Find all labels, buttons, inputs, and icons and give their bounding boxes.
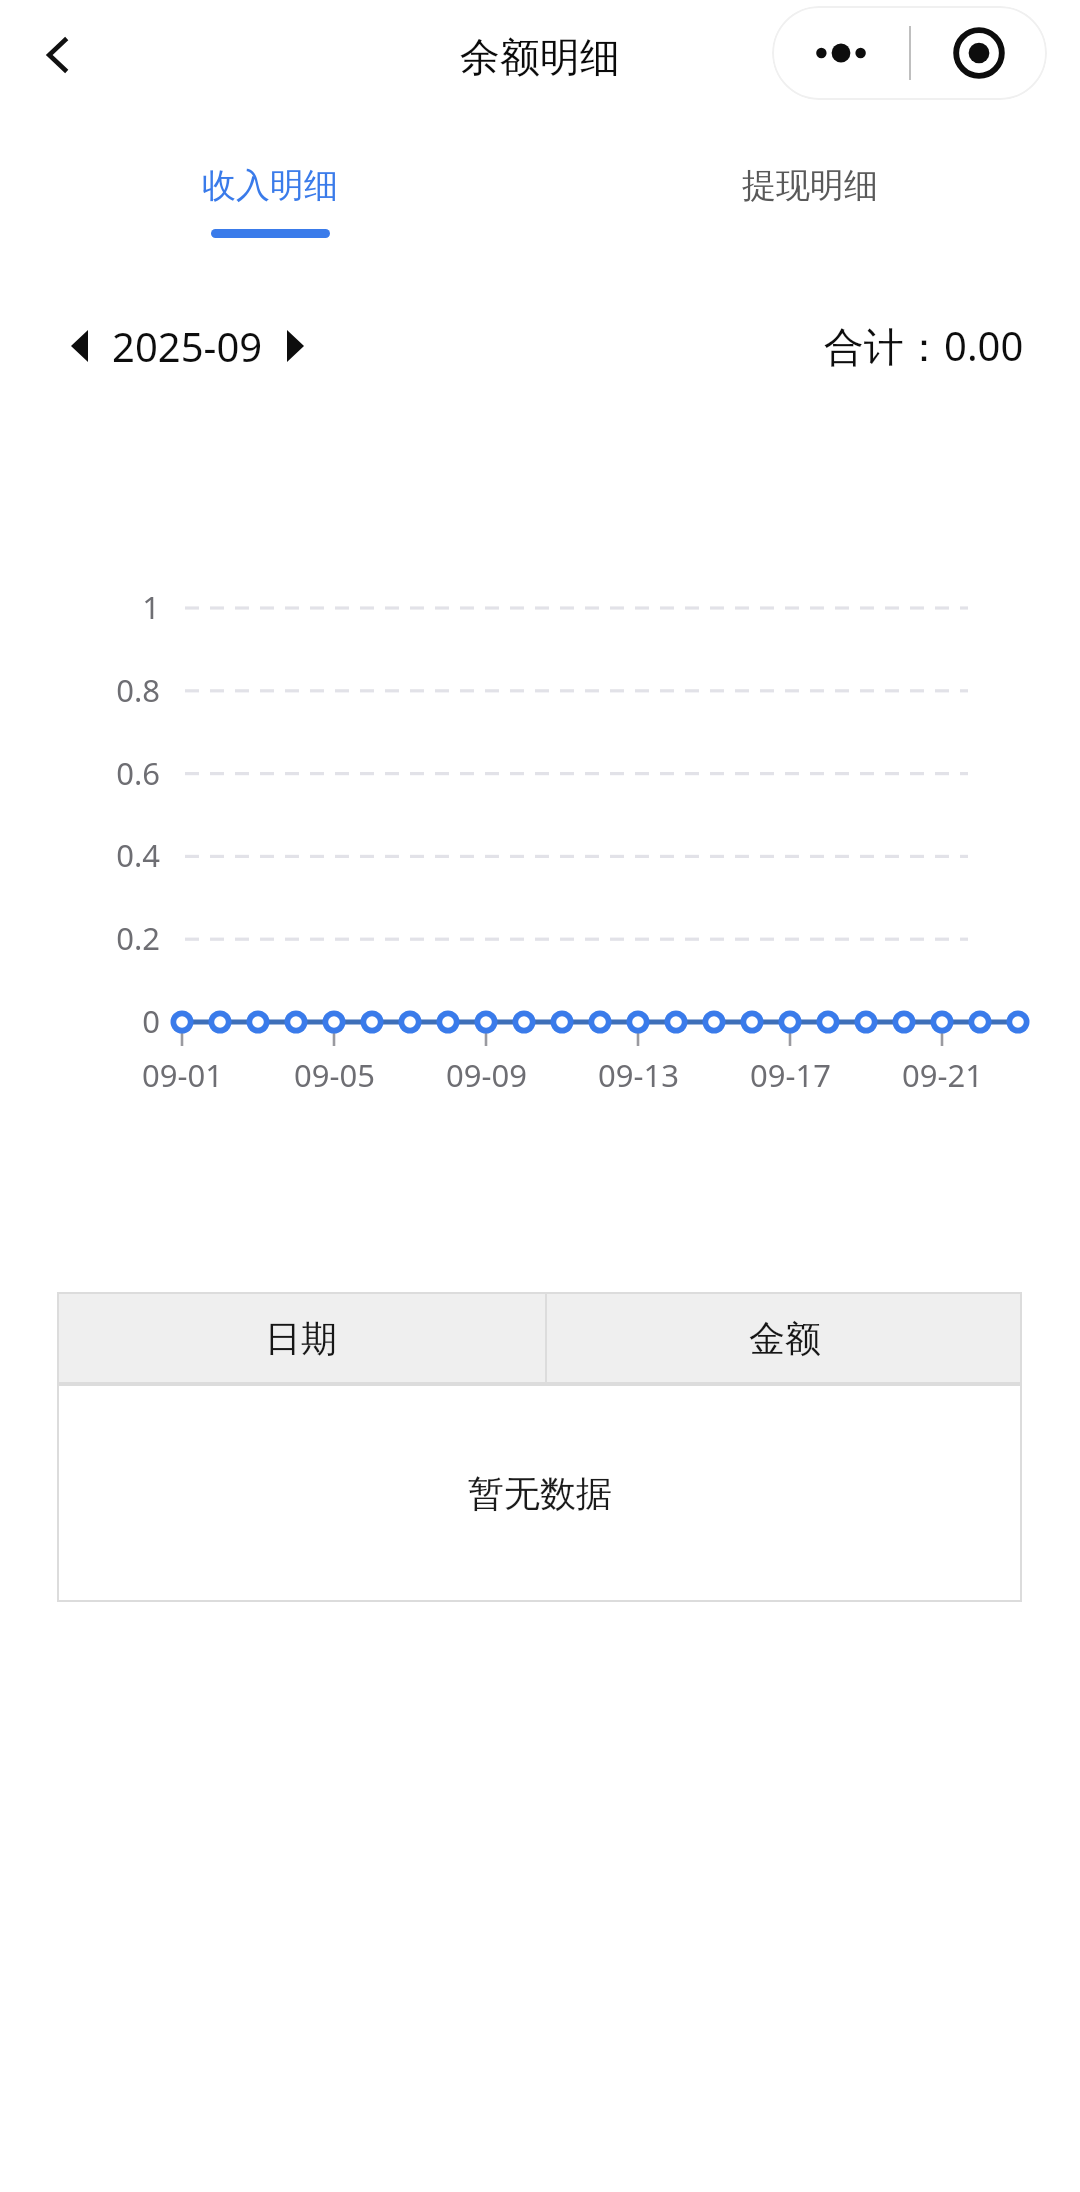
staticText: 合计：0.00 bbox=[824, 318, 1024, 373]
staticText: 09-05 bbox=[294, 1054, 375, 1096]
button[interactable]: Back bbox=[14, 11, 102, 99]
staticText: 提现明细 bbox=[742, 164, 878, 207]
staticText: 09-17 bbox=[750, 1054, 831, 1096]
button[interactable]: 金额 bbox=[547, 1292, 1022, 1384]
staticText: 0.8 bbox=[116, 669, 160, 711]
staticText: 09-09 bbox=[446, 1054, 527, 1096]
staticText: 0.2 bbox=[116, 917, 160, 959]
button[interactable]: More bbox=[772, 6, 909, 100]
staticText: 日期 bbox=[265, 1316, 337, 1361]
staticText: 暂无数据 bbox=[468, 1471, 612, 1516]
staticText: 0 bbox=[142, 1000, 160, 1042]
staticText: 0.6 bbox=[116, 752, 160, 794]
button[interactable]: 日期 bbox=[57, 1292, 545, 1384]
staticText: 09-21 bbox=[902, 1054, 983, 1096]
staticText: 09-01 bbox=[142, 1054, 223, 1096]
button[interactable]: 提现明细 bbox=[540, 140, 1080, 252]
button[interactable]: Previous month bbox=[56, 323, 102, 369]
button[interactable]: Next month bbox=[273, 323, 319, 369]
staticText: 金额 bbox=[749, 1316, 821, 1361]
button[interactable]: 收入明细 bbox=[0, 140, 540, 252]
button[interactable]: Close mini program bbox=[911, 6, 1047, 100]
staticText: 收入明细 bbox=[202, 164, 338, 207]
staticText: 余额明细 bbox=[460, 32, 620, 82]
staticText: 1 bbox=[142, 586, 160, 628]
staticText: 2025-09 bbox=[112, 319, 263, 373]
staticText: 0.4 bbox=[116, 834, 160, 876]
staticText: 09-13 bbox=[598, 1054, 679, 1096]
